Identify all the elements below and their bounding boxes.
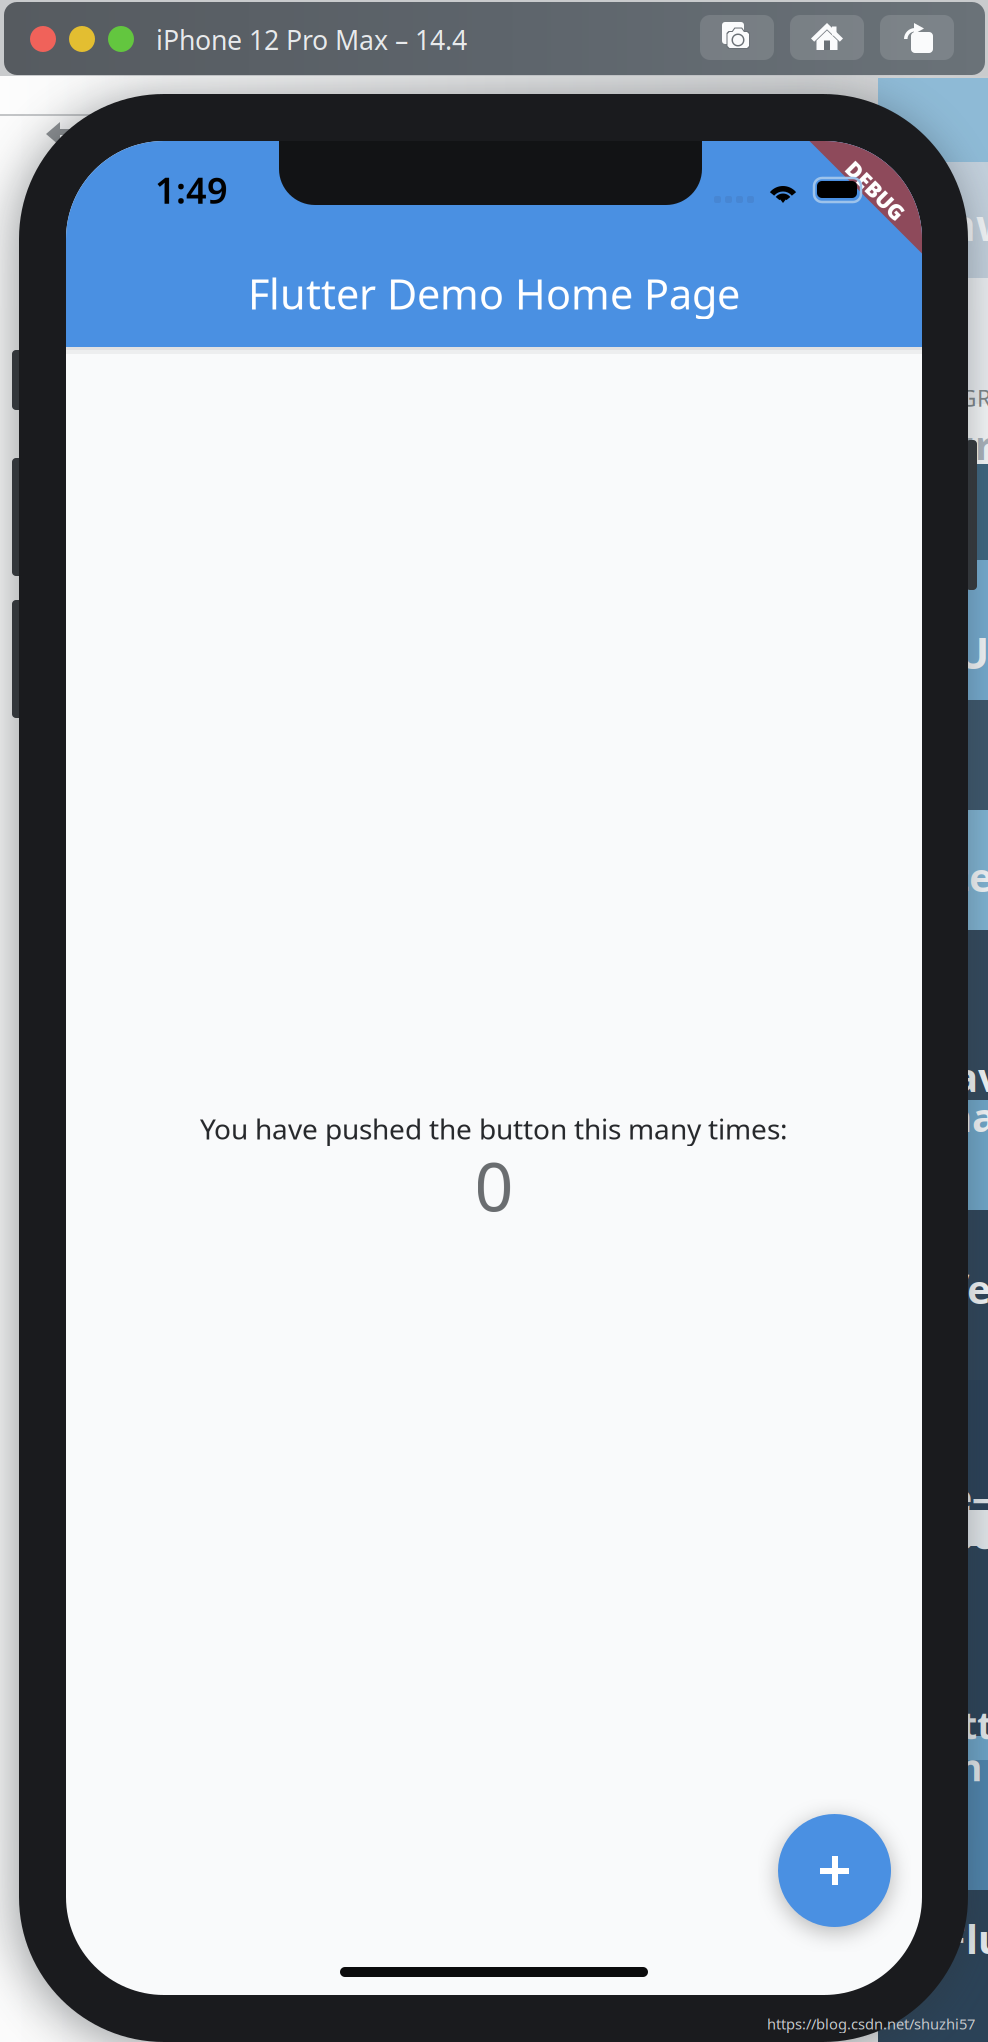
staticText: sc — [954, 1510, 988, 1560]
button[interactable]: Screenshot — [700, 15, 774, 60]
staticText: na — [946, 1090, 988, 1143]
button[interactable]: Home — [790, 15, 864, 60]
staticText: https://blog.csdn.net/shuzhi57 — [767, 2014, 975, 2033]
button[interactable]: Close — [30, 26, 56, 52]
staticText: e– — [950, 1472, 988, 1522]
staticText: U — [957, 624, 988, 681]
button[interactable]: Rotate — [880, 15, 954, 60]
staticText: lav — [942, 1050, 988, 1103]
button[interactable]: Minimize — [69, 26, 95, 52]
button[interactable]: Zoom — [108, 26, 134, 52]
staticText: itt — [950, 1700, 988, 1750]
staticText: n — [958, 1742, 982, 1792]
button[interactable]: Increment — [778, 1814, 891, 1927]
staticText: gr — [950, 418, 988, 471]
staticText: You have pushed the button this many tim… — [200, 1110, 788, 1147]
staticText: te — [952, 850, 988, 903]
staticText: g — [952, 466, 977, 519]
staticText: Flutter Demo Home Page — [248, 266, 740, 321]
staticText: Flu — [944, 1912, 988, 1965]
staticText: YGR — [948, 383, 988, 413]
staticText: iPhone 12 Pro Max – 14.4 — [156, 22, 467, 57]
staticText: 0 — [474, 1140, 513, 1230]
staticText: fe — [952, 1262, 988, 1315]
staticText: aw — [950, 196, 988, 253]
staticText: DEBUG — [838, 176, 912, 205]
staticText: 1:49 — [155, 166, 228, 214]
